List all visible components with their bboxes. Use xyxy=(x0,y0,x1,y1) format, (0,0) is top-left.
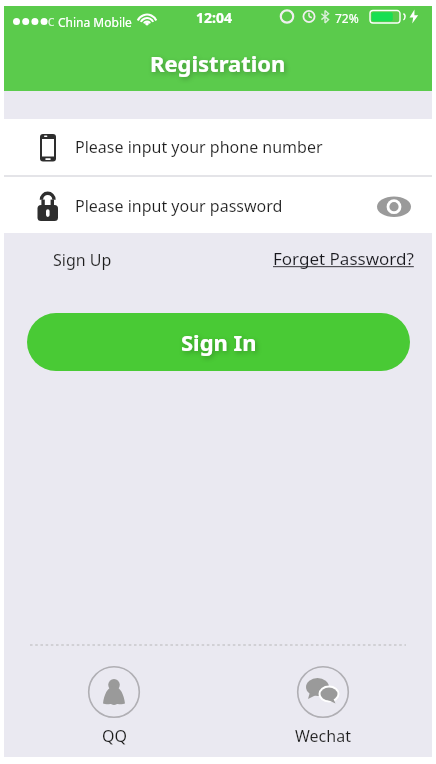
staticText: 12:04 xyxy=(196,8,232,26)
button[interactable]: Please input your phone number xyxy=(4,119,432,175)
staticText: QQ xyxy=(102,725,127,747)
button[interactable]: Sign In xyxy=(27,313,410,371)
staticText: Please input your phone number xyxy=(75,136,323,158)
staticText: Registration xyxy=(150,48,286,78)
staticText: C xyxy=(48,15,55,29)
button[interactable]: Forget Password? xyxy=(268,241,418,275)
staticText: China Mobile xyxy=(58,14,132,30)
button[interactable]: Sign Up xyxy=(37,244,127,276)
staticText: Wechat xyxy=(295,725,351,747)
button[interactable] xyxy=(372,191,418,223)
button[interactable]: QQ xyxy=(80,660,148,752)
staticText: Forget Password? xyxy=(273,247,414,270)
staticText: Please input your password xyxy=(75,195,283,217)
button[interactable]: Wechat xyxy=(289,660,357,752)
staticText: 72% xyxy=(335,10,359,26)
button[interactable]: Please input your password xyxy=(4,177,432,234)
staticText: Sign In xyxy=(181,327,257,357)
staticText: Sign Up xyxy=(53,249,112,271)
